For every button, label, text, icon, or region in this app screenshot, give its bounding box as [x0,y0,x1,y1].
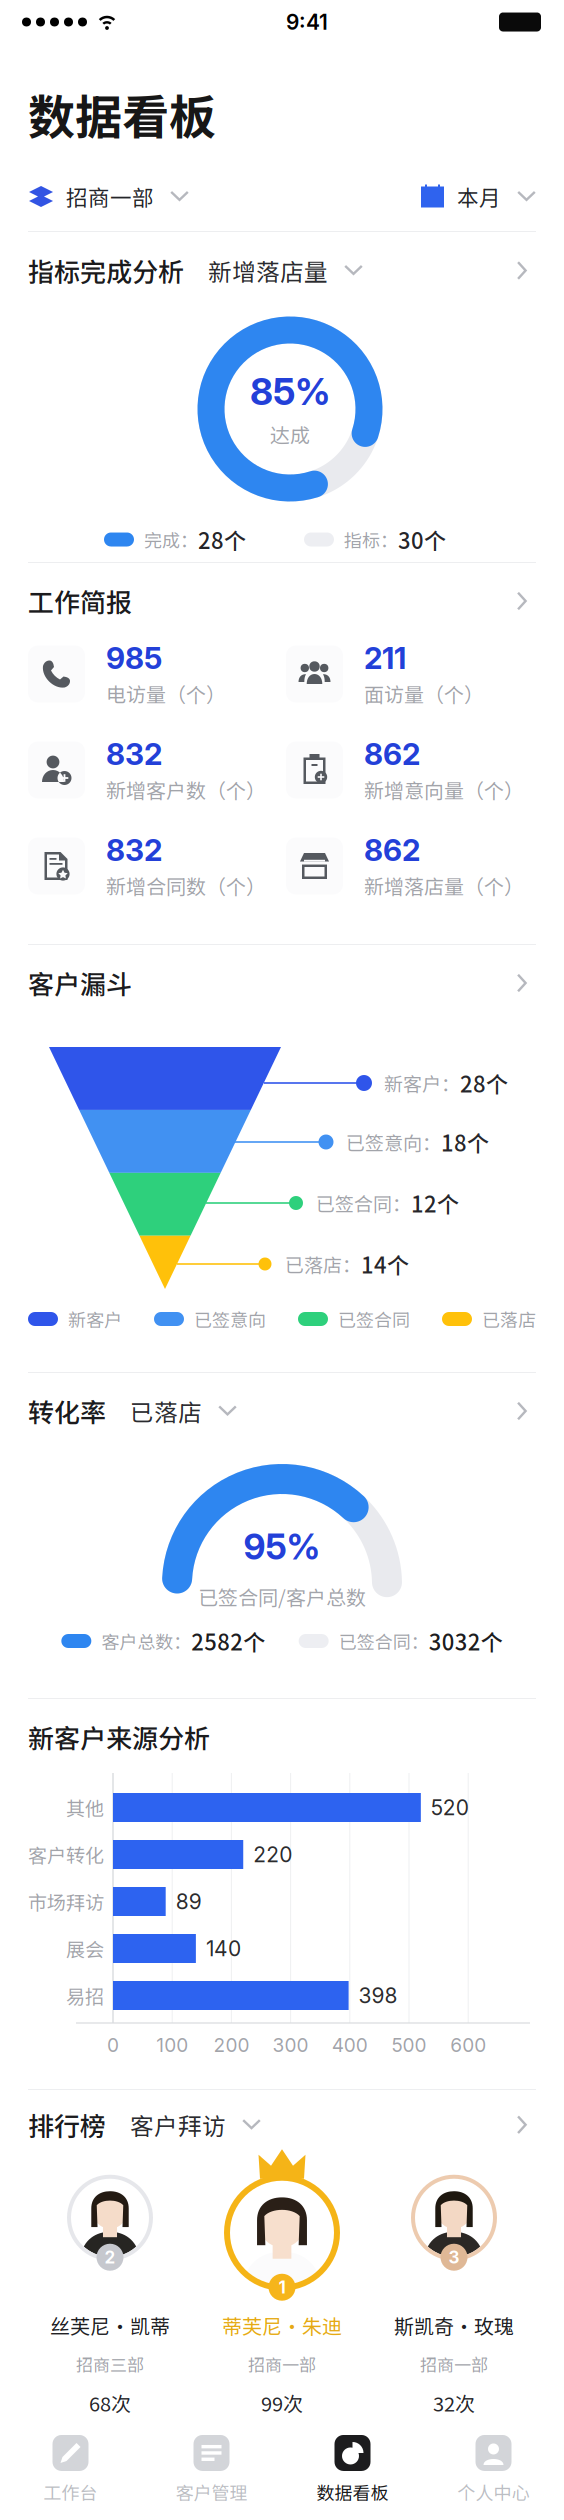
staticText: 28个 [198,524,246,555]
staticText: 862 [364,832,420,868]
staticText: 数据看板 [316,2479,388,2505]
button[interactable]: 查看更多 客户漏斗 [509,965,536,1000]
staticText: 300 [273,2033,309,2056]
staticText: 9:41 [286,9,328,35]
button[interactable]: 个人中心 [423,2420,564,2520]
staticText: 工作台 [43,2479,97,2505]
staticText: 89 [176,1889,202,1914]
staticText: 已签合同： [339,1628,429,1654]
button[interactable]: 查看更多 排行榜 [509,2107,536,2142]
staticText: 30个 [398,524,446,555]
staticText: 丝芙尼·凯蒂 [50,2311,170,2340]
button[interactable]: 查看更多 转化率 [509,1393,536,1428]
button[interactable]: 新增落店量 [184,250,363,290]
staticText: 3032个 [429,1625,503,1657]
staticText: 832 [106,736,162,772]
staticText: 140 [206,1936,241,1961]
staticText: 95% [243,1526,320,1568]
staticText: 500 [391,2033,426,2056]
staticText: 达成 [270,420,310,449]
staticText: 2582个 [191,1625,265,1657]
button[interactable]: 本月 [420,173,536,219]
staticText: 85% [250,369,330,414]
staticText: 220 [253,1842,292,1867]
button[interactable]: 查看更多 指标完成分析 [509,253,536,288]
staticText: 完成： [144,526,198,553]
staticText: 客户管理 [175,2479,247,2505]
staticText: 已签合同 [338,1306,410,1332]
staticText: 已落店： [285,1250,361,1278]
button[interactable]: 招商一部 [28,173,189,219]
staticText: 新增合同数（个） [106,871,266,900]
staticText: 200 [213,2033,249,2056]
staticText: 211 [364,640,406,676]
staticText: 排行榜 [28,2106,106,2143]
staticText: 电访量（个） [106,679,226,708]
staticText: 832 [106,832,162,868]
staticText: 新增客户数（个） [106,775,266,804]
staticText: 本月 [457,181,501,212]
staticText: 3 [448,2247,459,2267]
button[interactable]: 查看更多 工作简报 [509,583,536,618]
staticText: 已签意向 [194,1306,266,1332]
staticText: 指标完成分析 [28,252,184,289]
staticText: 客户拜访 [130,2108,226,2142]
staticText: 客户漏斗 [28,964,132,1002]
staticText: 其他 [66,1794,104,1821]
staticText: 1 [278,2277,285,2297]
staticText: 招商一部 [66,181,154,212]
staticText: 新客户来源分析 [28,1718,210,1756]
staticText: 新客户 [68,1306,122,1332]
staticText: 数据看板 [28,80,216,148]
staticText: 市场拜访 [28,1888,104,1915]
staticText: 新增意向量（个） [364,775,524,804]
staticText: 招商一部 [420,2352,488,2376]
staticText: 工作简报 [28,582,132,620]
staticText: 已落店 [482,1306,536,1332]
staticText: 斯凯奇·玫瑰 [394,2311,514,2340]
staticText: 招商三部 [76,2352,144,2376]
button[interactable]: 客户管理 [141,2420,282,2520]
staticText: 28个 [460,1067,508,1099]
staticText: 12个 [411,1187,459,1219]
staticText: 易招 [66,1982,104,2009]
staticText: 新增落店量 [208,253,328,287]
staticText: 100 [156,2033,188,2056]
staticText: 68次 [89,2388,131,2417]
staticText: 862 [364,736,420,772]
staticText: 招商一部 [248,2352,316,2376]
staticText: 新客户： [384,1069,460,1097]
staticText: 600 [450,2033,486,2056]
button[interactable]: 客户拜访 [106,2105,261,2145]
staticText: 14个 [361,1248,409,1280]
staticText: 2 [104,2247,115,2267]
staticText: 398 [359,1983,398,2008]
button[interactable]: 已落店 [106,1391,237,1431]
staticText: 个人中心 [457,2479,529,2505]
staticText: 转化率 [28,1392,106,1430]
button[interactable]: 数据看板 [282,2420,423,2520]
staticText: 18个 [441,1126,489,1158]
staticText: 520 [431,1795,469,1820]
staticText: 99次 [261,2388,303,2417]
staticText: 展会 [66,1935,104,1962]
staticText: 已签合同： [316,1189,411,1217]
staticText: 32次 [433,2388,475,2417]
staticText: 客户转化 [28,1841,104,1868]
staticText: 面访量（个） [364,679,484,708]
staticText: 已签合同/客户总数 [198,1582,366,1611]
staticText: 指标： [344,526,398,553]
staticText: 985 [106,640,162,676]
staticText: 400 [332,2033,368,2056]
staticText: 客户总数： [101,1628,191,1654]
staticText: 蒂芙尼·朱迪 [222,2311,342,2340]
button[interactable]: 工作台 [0,2420,141,2520]
staticText: 新增落店量（个） [364,871,524,900]
staticText: 已落店 [130,1394,202,1428]
staticText: 已签意向： [346,1128,441,1156]
staticText: 0 [107,2033,119,2056]
